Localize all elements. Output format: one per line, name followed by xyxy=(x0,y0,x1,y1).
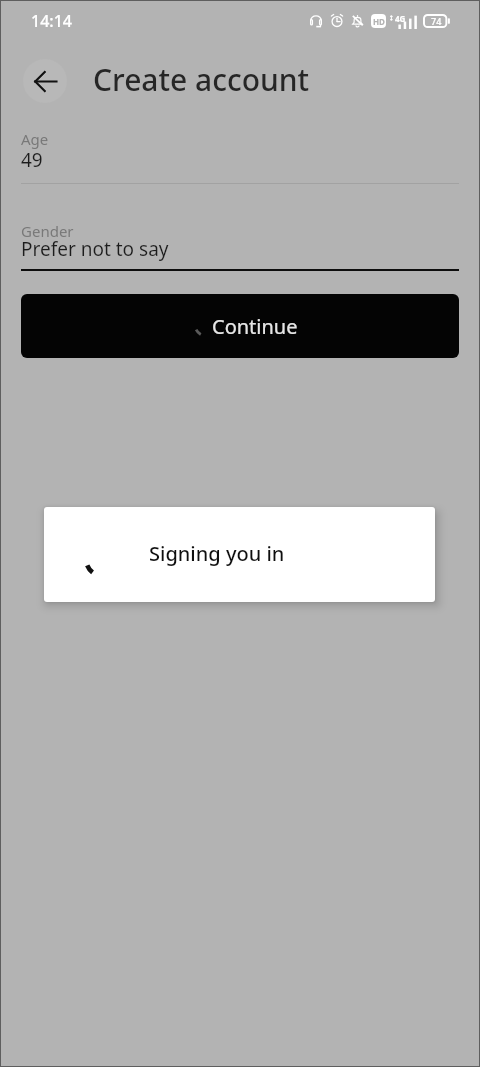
button[interactable]: Age xyxy=(21,124,459,184)
staticText: Continue xyxy=(212,313,298,340)
button[interactable]: Gender xyxy=(21,214,459,271)
staticText: 4G xyxy=(395,13,406,24)
staticText: 74 xyxy=(431,15,442,27)
staticText: 14:14 xyxy=(31,10,72,32)
staticText: Create account xyxy=(93,59,310,100)
staticText: HD xyxy=(373,16,385,27)
staticText: Gender xyxy=(21,221,74,241)
staticText: 49 xyxy=(21,147,43,173)
button[interactable]: Continue xyxy=(21,294,459,358)
staticText: Prefer not to say xyxy=(21,236,169,262)
staticText: Signing you in xyxy=(149,540,285,567)
staticText: Age xyxy=(21,129,49,149)
button[interactable]: Back xyxy=(23,59,67,103)
